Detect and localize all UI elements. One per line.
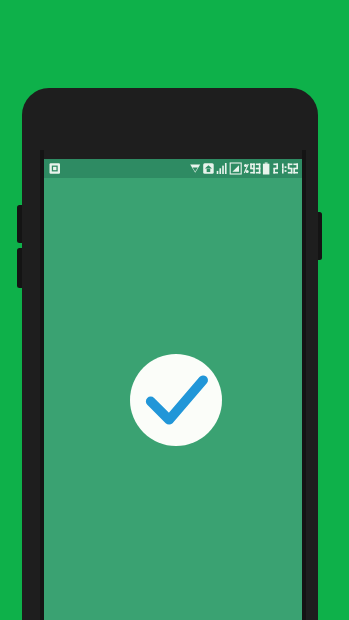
button[interactable]: Success, verified (130, 354, 222, 446)
